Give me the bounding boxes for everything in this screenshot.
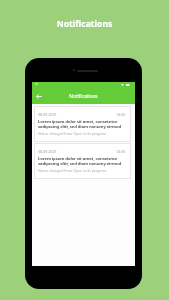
staticText: Lorem ipsum dolor sit amet, consetetur s… <box>38 155 126 167</box>
button[interactable]: 08-09-2021 <box>34 143 131 179</box>
staticText: 08-09-2021 <box>38 149 57 154</box>
button[interactable]: Back <box>33 89 45 103</box>
button[interactable]: 08-09-2021 <box>34 106 131 142</box>
staticText: 08-09-2021 <box>38 112 57 117</box>
staticText: Notifications <box>32 93 135 99</box>
staticText: 14:30 <box>116 112 126 117</box>
staticText: Notifications <box>0 18 169 30</box>
staticText: Status changed from Open to In progress <box>38 131 107 136</box>
staticText: Status changed from Open to In progress <box>38 168 107 173</box>
staticText: Lorem ipsum dolor sit amet, consetetur s… <box>38 118 126 130</box>
staticText: 14:30 <box>116 149 126 154</box>
